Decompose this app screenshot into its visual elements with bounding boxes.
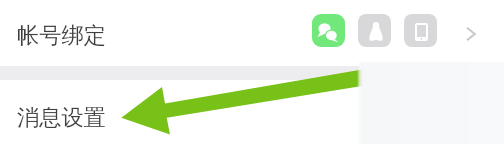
button[interactable]: 消息设置 [0,80,504,144]
button[interactable]: 手机 [404,14,437,47]
button[interactable]: 更多 [460,23,482,45]
button[interactable]: 帐号绑定 [0,0,504,66]
button[interactable]: 微信 [312,14,345,47]
staticText: 帐号绑定 [17,22,106,50]
staticText: 消息设置 [17,104,106,132]
button[interactable]: QQ [358,14,391,47]
